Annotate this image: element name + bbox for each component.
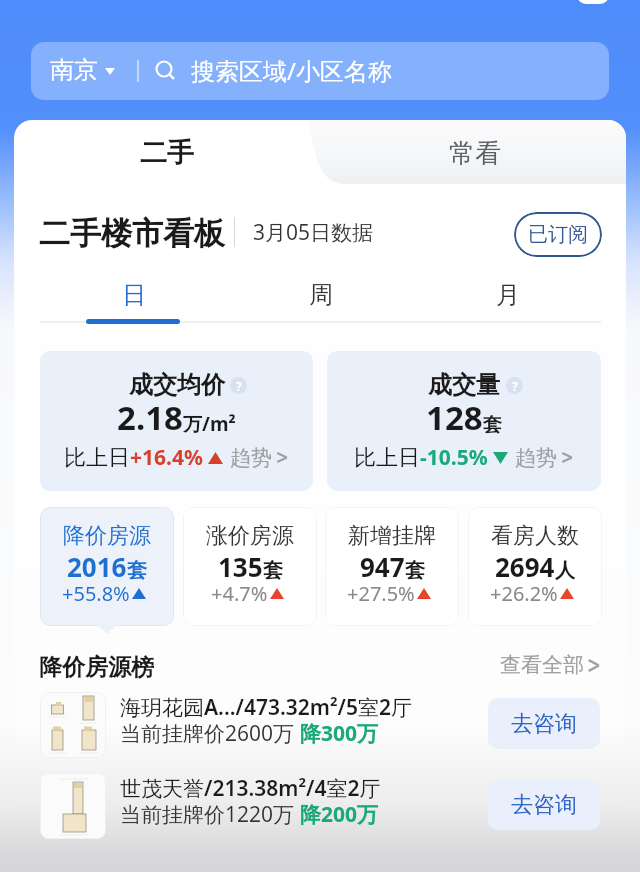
button[interactable]: 海玥花园A.../473.32m²/5室2厅: [0, 692, 640, 771]
staticText: 海玥花园A.../473.32m²/5室2厅: [120, 693, 413, 721]
button[interactable]: 日: [40, 271, 227, 319]
button[interactable]: 去咨询: [488, 779, 600, 830]
staticText: 去咨询: [511, 791, 577, 819]
staticText: 查看全部: [500, 652, 584, 678]
staticText: -10.5%: [420, 443, 488, 472]
staticText: 新增挂牌: [348, 522, 436, 550]
button[interactable]: 涨价房源: [183, 507, 317, 626]
staticText: 套: [127, 558, 147, 583]
staticText: 2016: [67, 549, 127, 584]
staticText: 世茂天誉/213.38m²/4室2厅: [120, 774, 381, 802]
staticText: 套: [483, 413, 502, 437]
button[interactable]: 降价房源: [40, 507, 174, 626]
staticText: 去咨询: [511, 710, 577, 738]
button[interactable]: 看房人数: [468, 507, 602, 626]
button[interactable]: 二手: [140, 136, 194, 170]
staticText: ?: [512, 378, 518, 394]
staticText: 2.18: [117, 395, 183, 439]
staticText: 降300万: [300, 719, 379, 747]
button[interactable]: 南京: [31, 42, 609, 100]
other: 指标说明: [506, 377, 523, 394]
staticText: +16.4%: [130, 443, 203, 472]
button[interactable]: 去咨询: [488, 698, 600, 749]
staticText: +26.2%: [490, 580, 558, 607]
button[interactable]: 成交量: [327, 351, 601, 491]
staticText: 2694: [495, 549, 555, 584]
staticText: ?: [236, 378, 242, 394]
staticText: 成交量: [428, 370, 500, 400]
staticText: 降价房源: [63, 522, 151, 550]
staticText: 万/m²: [183, 411, 236, 437]
staticText: 135: [218, 549, 263, 584]
button[interactable]: 查看全部: [500, 652, 601, 678]
staticText: 套: [405, 558, 425, 583]
staticText: 套: [263, 558, 283, 583]
staticText: 搜索区域/小区名称: [191, 54, 392, 87]
staticText: 947: [360, 549, 405, 584]
staticText: 当前挂牌价2600万: [120, 719, 300, 747]
staticText: 比上日: [64, 444, 130, 472]
staticText: 看房人数: [491, 522, 579, 550]
button[interactable]: 周: [227, 271, 414, 319]
staticText: 人: [555, 558, 575, 583]
staticText: 128: [426, 395, 483, 439]
button[interactable]: 已订阅: [514, 212, 602, 257]
staticText: 比上日: [354, 444, 420, 472]
staticText: 涨价房源: [206, 522, 294, 550]
staticText: 已订阅: [528, 222, 588, 247]
staticText: +4.7%: [211, 580, 268, 607]
staticText: +27.5%: [347, 580, 415, 607]
staticText: 周: [309, 280, 333, 310]
staticText: 成交均价: [129, 370, 225, 400]
staticText: 南京: [50, 55, 98, 85]
staticText: 降200万: [300, 800, 379, 828]
staticText: 3月05日数据: [253, 218, 374, 247]
staticText: 二手楼市看板: [39, 214, 225, 253]
other: 指标说明: [230, 377, 247, 394]
button[interactable]: 月: [414, 271, 601, 319]
staticText: 当前挂牌价1220万: [120, 800, 300, 828]
staticText: 日: [122, 280, 146, 310]
button[interactable]: 成交均价: [40, 351, 313, 491]
staticText: 趋势: [515, 445, 557, 471]
staticText: 趋势: [230, 445, 272, 471]
staticText: +55.8%: [62, 580, 130, 607]
staticText: 月: [496, 280, 520, 310]
staticText: 降价房源榜: [39, 653, 154, 682]
button[interactable]: 常看: [449, 137, 501, 170]
button[interactable]: 新增挂牌: [325, 507, 459, 626]
button[interactable]: 世茂天誉/213.38m²/4室2厅: [0, 773, 640, 852]
